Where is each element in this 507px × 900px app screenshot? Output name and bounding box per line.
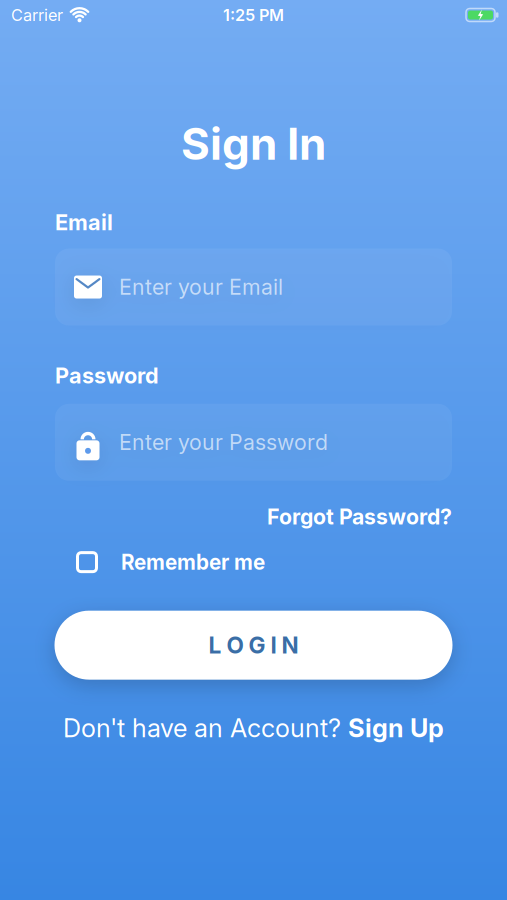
- button[interactable]: Forgot Password?: [267, 504, 452, 530]
- button[interactable]: Remember me: [0, 550, 507, 575]
- staticText: Enter your Email: [119, 274, 283, 300]
- staticText: Enter your Password: [119, 429, 328, 455]
- staticText: Password: [55, 362, 159, 389]
- staticText: Remember me: [121, 550, 265, 575]
- staticText: Don't have an Account?: [63, 713, 348, 743]
- button[interactable]: Enter your Password: [55, 404, 452, 481]
- button[interactable]: Enter your Email: [55, 248, 452, 325]
- staticText: Sign Up: [348, 713, 444, 743]
- staticText: Carrier: [11, 5, 63, 25]
- button[interactable]: Sign Up: [348, 713, 444, 743]
- staticText: L O G I N: [208, 631, 298, 659]
- button[interactable]: L O G I N: [54, 611, 452, 680]
- staticText: Forgot Password?: [267, 504, 452, 530]
- staticText: Sign In: [181, 117, 326, 170]
- staticText: Email: [55, 209, 113, 235]
- staticText: 1:25 PM: [223, 5, 284, 25]
